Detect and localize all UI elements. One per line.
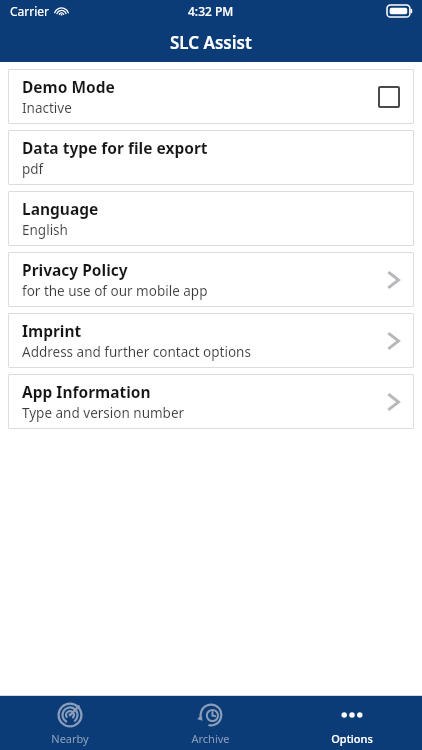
button[interactable]: Demo Mode	[8, 69, 414, 124]
staticText: Demo Mode	[22, 76, 115, 97]
staticText: Inactive	[22, 99, 72, 117]
staticText: Address and further contact options	[22, 343, 251, 361]
button[interactable]: Archive	[140, 696, 281, 750]
staticText: Options	[331, 731, 373, 746]
staticText: SLC Assist	[170, 31, 252, 54]
staticText: Imprint	[22, 320, 82, 341]
staticText: pdf	[22, 160, 44, 178]
button[interactable]: Options	[281, 696, 422, 750]
button[interactable]: Nearby	[0, 696, 140, 750]
staticText: English	[22, 221, 68, 239]
staticText: Carrier	[10, 3, 50, 19]
button[interactable]: Data type for file export	[8, 130, 414, 185]
button[interactable]: Language	[8, 191, 414, 246]
button[interactable]: Privacy Policy	[8, 252, 414, 307]
staticText: Privacy Policy	[22, 259, 128, 280]
staticText: Archive	[191, 731, 230, 746]
staticText: Language	[22, 198, 99, 219]
button[interactable]: Imprint	[8, 313, 414, 368]
staticText: Data type for file export	[22, 137, 208, 158]
staticText: App Information	[22, 381, 151, 402]
staticText: Type and version number	[22, 404, 185, 422]
staticText: Nearby	[51, 731, 89, 746]
button[interactable]: Demo Mode toggle	[378, 86, 400, 108]
button[interactable]: App Information	[8, 374, 414, 429]
staticText: for the use of our mobile app	[22, 282, 208, 300]
staticText: 4:32 PM	[188, 3, 234, 19]
